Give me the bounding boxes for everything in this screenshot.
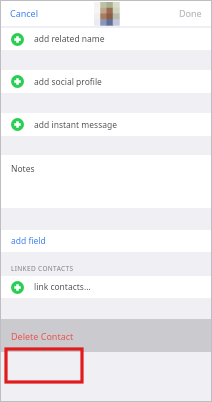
staticText: Done — [179, 7, 202, 19]
staticText: add social profile — [34, 76, 102, 88]
staticText: add field — [11, 235, 46, 247]
staticText: add instant message — [34, 119, 117, 131]
button[interactable]: link contacts... — [0, 276, 212, 298]
button[interactable]: Contact photo — [94, 2, 119, 25]
staticText: add related name — [34, 33, 105, 45]
staticText: link contacts... — [34, 281, 91, 293]
button[interactable]: Notes — [0, 155, 212, 208]
staticText: Cancel — [10, 7, 39, 19]
button[interactable]: add social profile — [0, 70, 212, 93]
button[interactable]: Done — [169, 2, 212, 24]
button[interactable]: add instant message — [0, 113, 212, 136]
button[interactable]: Cancel — [0, 2, 49, 24]
staticText: LINKED CONTACTS — [11, 264, 74, 273]
button[interactable]: add related name — [0, 28, 212, 50]
staticText: Delete Contact — [11, 330, 74, 342]
staticText: Notes — [11, 163, 35, 175]
button[interactable]: Delete Contact — [0, 319, 212, 352]
button[interactable]: add field — [0, 230, 212, 252]
